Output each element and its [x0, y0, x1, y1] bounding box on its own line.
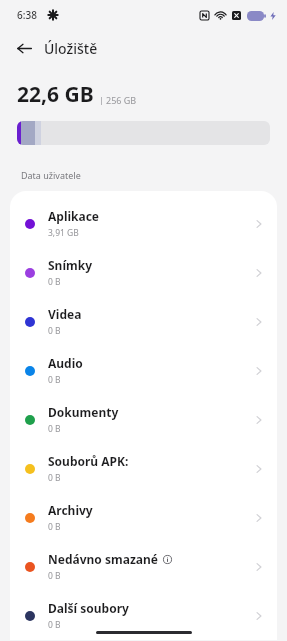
staticText: Archivy [48, 502, 93, 518]
staticText: Další soubory [48, 600, 129, 616]
staticText: Videa [48, 306, 82, 322]
button[interactable]: Videa [10, 297, 277, 346]
button[interactable]: Dokumenty [10, 395, 277, 444]
staticText: Data uživatele [21, 169, 81, 181]
staticText: 0 B [48, 570, 61, 582]
staticText: Audio [48, 355, 83, 371]
button[interactable]: Další soubory [10, 591, 277, 640]
staticText: Snímky [48, 257, 92, 273]
staticText: Nedávno smazané [48, 551, 158, 567]
staticText: 256 GB [106, 94, 137, 106]
staticText: 0 B [48, 276, 61, 288]
button[interactable]: Back [10, 34, 38, 62]
staticText: Aplikace [48, 208, 100, 224]
staticText: 6:38 [17, 8, 37, 22]
staticText: 0 B [48, 521, 61, 533]
button[interactable]: Nedávno smazané [10, 542, 277, 591]
staticText: Dokumenty [48, 404, 119, 420]
button[interactable]: Aplikace [10, 199, 277, 248]
button[interactable]: Snímky [10, 248, 277, 297]
staticText: Souborů APK: [48, 453, 129, 469]
staticText: 0 B [48, 423, 61, 435]
button[interactable]: Souborů APK: [10, 444, 277, 493]
staticText: 3,91 GB [48, 227, 79, 239]
button[interactable]: Archivy [10, 493, 277, 542]
staticText: 0 B [48, 619, 61, 631]
staticText: Úložiště [44, 39, 98, 58]
staticText: 0 B [48, 325, 61, 337]
staticText: 0 B [48, 472, 61, 484]
staticText: 22,6 GB [17, 80, 94, 109]
button[interactable]: Audio [10, 346, 277, 395]
staticText: 0 B [48, 374, 61, 386]
